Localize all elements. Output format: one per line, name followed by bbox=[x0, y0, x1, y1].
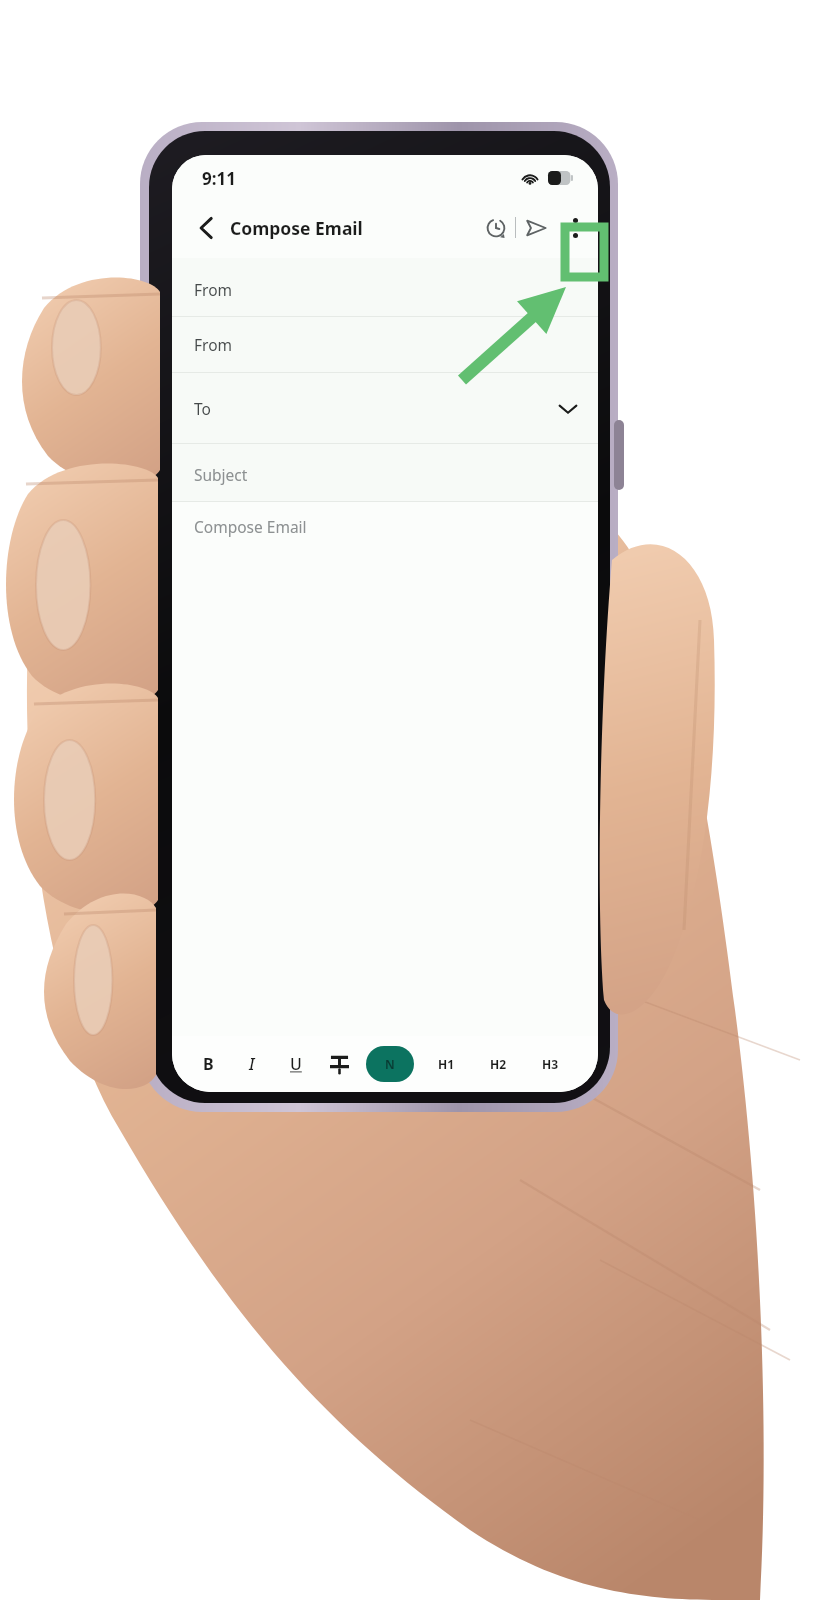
button[interactable]: To bbox=[172, 373, 598, 443]
button[interactable]: Strikethrough bbox=[318, 1043, 360, 1085]
staticText: H1 bbox=[438, 1056, 455, 1072]
button[interactable]: H1 bbox=[420, 1042, 472, 1086]
button[interactable]: N bbox=[366, 1046, 414, 1082]
button[interactable]: Send bbox=[516, 208, 556, 248]
button[interactable]: H3 bbox=[524, 1042, 576, 1086]
button[interactable]: H2 bbox=[472, 1042, 524, 1086]
button[interactable]: Subject bbox=[172, 444, 598, 501]
staticText: N bbox=[385, 1056, 395, 1072]
staticText: H2 bbox=[490, 1056, 507, 1072]
button[interactable]: Back bbox=[186, 208, 226, 248]
staticText: I bbox=[249, 1053, 255, 1075]
staticText: To bbox=[194, 398, 211, 419]
staticText: H3 bbox=[542, 1056, 559, 1072]
staticText: B bbox=[203, 1053, 214, 1075]
button[interactable]: I bbox=[230, 1042, 274, 1086]
button[interactable]: More options bbox=[558, 204, 592, 252]
button[interactable]: U bbox=[274, 1042, 318, 1086]
button[interactable]: B bbox=[186, 1042, 230, 1086]
staticText: Subject bbox=[194, 464, 248, 485]
button[interactable]: From bbox=[172, 317, 598, 372]
staticText: From bbox=[194, 279, 233, 300]
staticText: Compose Email bbox=[230, 216, 363, 240]
button[interactable]: Schedule send bbox=[477, 209, 515, 247]
staticText: From bbox=[194, 334, 233, 355]
staticText: Compose Email bbox=[194, 516, 307, 537]
staticText: U bbox=[290, 1053, 302, 1075]
staticText: 9:11 bbox=[202, 167, 236, 190]
button[interactable]: From bbox=[172, 258, 598, 316]
button[interactable]: Compose Email bbox=[172, 502, 598, 1036]
